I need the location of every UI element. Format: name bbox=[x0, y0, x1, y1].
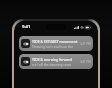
other: App icon bbox=[21, 39, 30, 48]
button[interactable]: App icon bbox=[19, 36, 93, 51]
staticText: surf off the dawning coast bbox=[32, 63, 72, 67]
staticText: Showing sort results on the document bbox=[32, 45, 78, 49]
other: App icon bbox=[21, 57, 30, 66]
button[interactable]: App icon bbox=[19, 54, 93, 69]
staticText: 3:41 PM bbox=[80, 42, 91, 46]
staticText: TIDE & ESTUARY movement bbox=[32, 39, 78, 44]
staticText: TIDE & morning forward bbox=[32, 57, 73, 62]
staticText: 3:41 PM bbox=[80, 60, 91, 64]
staticText: 9:41 bbox=[22, 24, 31, 30]
